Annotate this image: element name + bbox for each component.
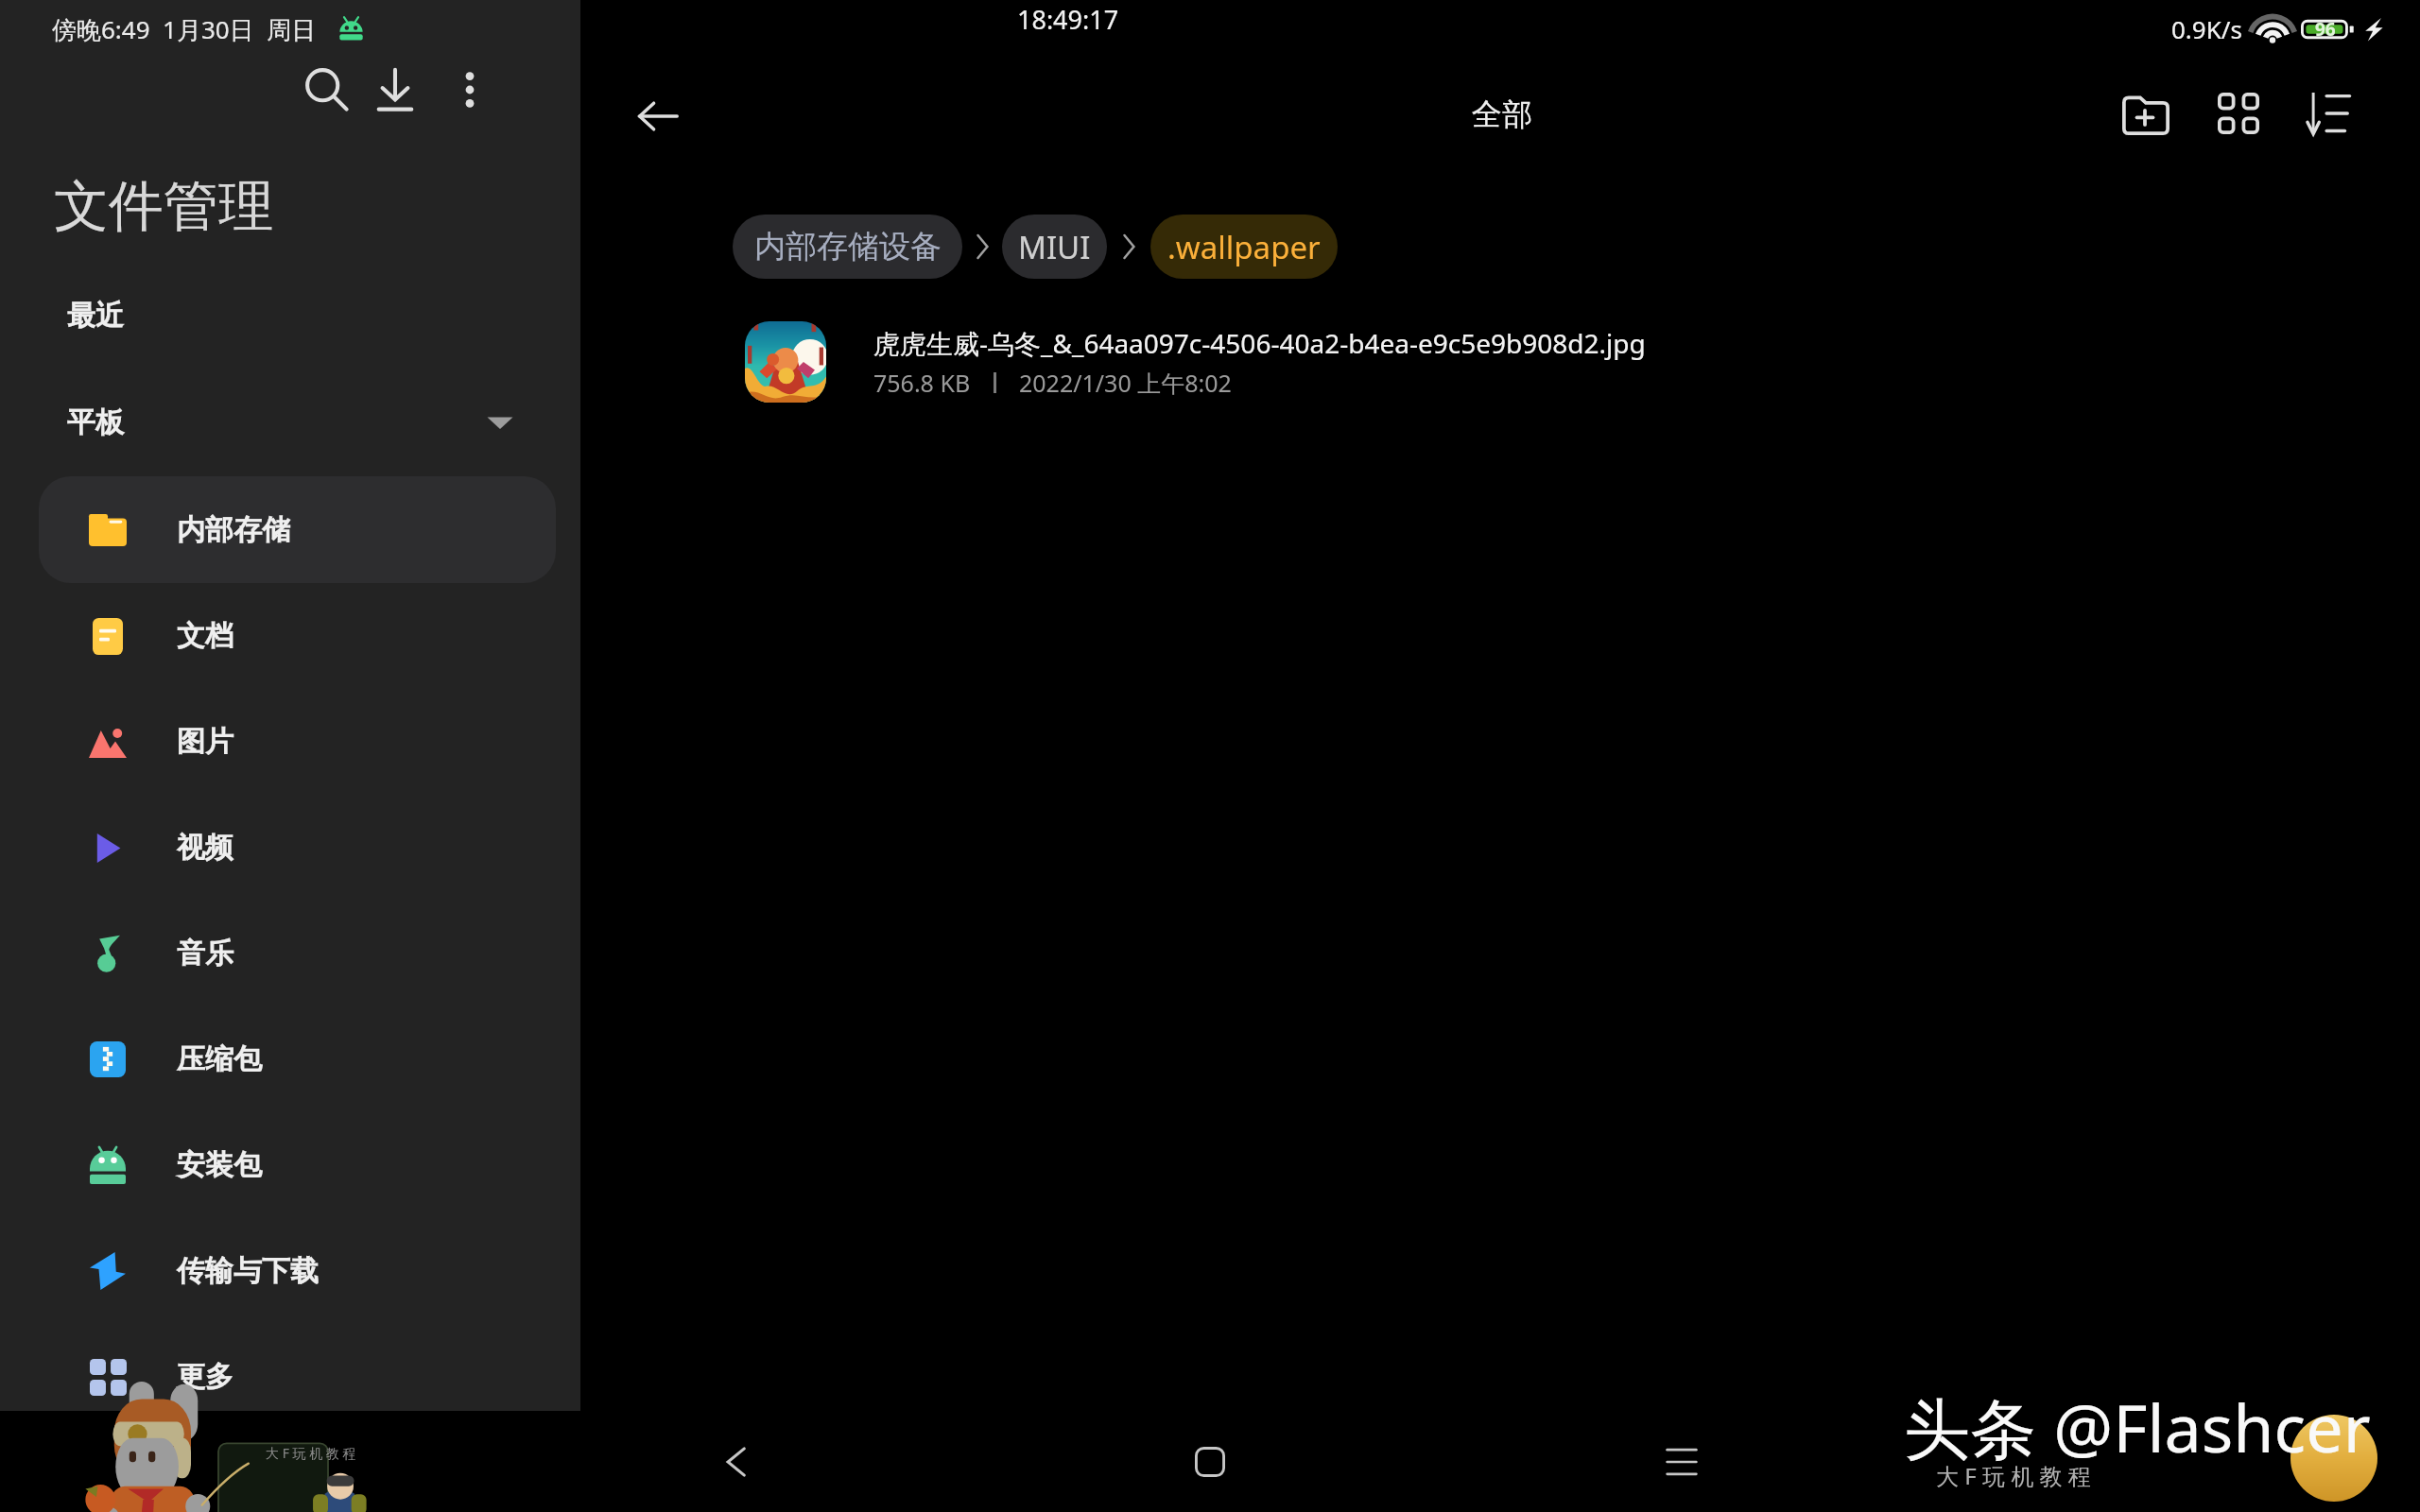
button[interactable]: 压缩包 (39, 1005, 556, 1112)
button[interactable]: 文档 (39, 582, 556, 689)
button[interactable]: 图片 (39, 688, 556, 795)
staticText: 安装包 (177, 1147, 262, 1183)
button[interactable]: 内部存储 (39, 476, 556, 583)
staticText: 756.8 KB (873, 367, 971, 399)
button[interactable]: 平板 (26, 382, 554, 463)
button[interactable]: .wallpaper (1150, 215, 1338, 279)
button[interactable]: 传输与下载 (39, 1217, 556, 1324)
staticText: 全部 (1472, 95, 1532, 133)
button[interactable]: Sort (2285, 70, 2372, 157)
button[interactable]: 最近 (26, 275, 554, 356)
staticText: 视频 (177, 830, 233, 866)
button[interactable]: MIUI (1002, 215, 1107, 279)
staticText: 18:49:17 (1017, 2, 1119, 37)
staticText: 传输与下载 (177, 1253, 319, 1289)
staticText: 内部存储 (177, 512, 290, 548)
button[interactable]: 内部存储设备 (733, 215, 962, 279)
staticText: 文件管理 (54, 172, 273, 241)
button[interactable]: 音乐 (39, 900, 556, 1006)
staticText: 文档 (177, 618, 233, 654)
staticText: 压缩包 (177, 1041, 262, 1077)
staticText: 虎虎生威-乌冬_&_64aa097c-4506-40a2-b4ea-e9c5e9… (873, 325, 1646, 361)
button[interactable]: 视频 (39, 794, 556, 901)
staticText: 傍晚6:49 1月30日 周日 (52, 12, 317, 46)
staticText: 更多 (177, 1359, 233, 1395)
button[interactable]: Downloads (354, 48, 437, 131)
button[interactable]: 虎虎生威-乌冬_&_64aa097c-4506-40a2-b4ea-e9c5e9… (700, 312, 2382, 410)
staticText: 平板 (67, 404, 124, 440)
staticText: 音乐 (177, 936, 233, 971)
button[interactable]: 更多 (39, 1323, 556, 1430)
staticText: 最近 (67, 298, 124, 334)
staticText: 2022/1/30 上午8:02 (1019, 367, 1232, 399)
staticText: 0.9K/s (2171, 12, 2242, 45)
button[interactable]: Home (1159, 1411, 1261, 1512)
button[interactable]: Search (285, 48, 369, 131)
staticText: MIUI (1018, 226, 1091, 268)
button[interactable]: Grid view (2195, 70, 2282, 157)
button[interactable]: More options (428, 48, 511, 131)
staticText: 图片 (177, 724, 233, 760)
staticText: .wallpaper (1167, 226, 1321, 268)
button[interactable]: 安装包 (39, 1111, 556, 1218)
staticText: 大 F 玩 机 教 程 (266, 1444, 356, 1462)
button[interactable]: Recents (1631, 1411, 1733, 1512)
staticText: 头条 @Flashcer (1904, 1382, 2371, 1472)
button[interactable]: New folder (2102, 70, 2189, 157)
staticText: 内部存储设备 (754, 227, 942, 266)
button[interactable]: Back (685, 1411, 787, 1512)
staticText: 大 F 玩 机 教 程 (1936, 1460, 2091, 1491)
staticText: 96 (2315, 17, 2336, 42)
button[interactable]: Back (616, 75, 700, 158)
